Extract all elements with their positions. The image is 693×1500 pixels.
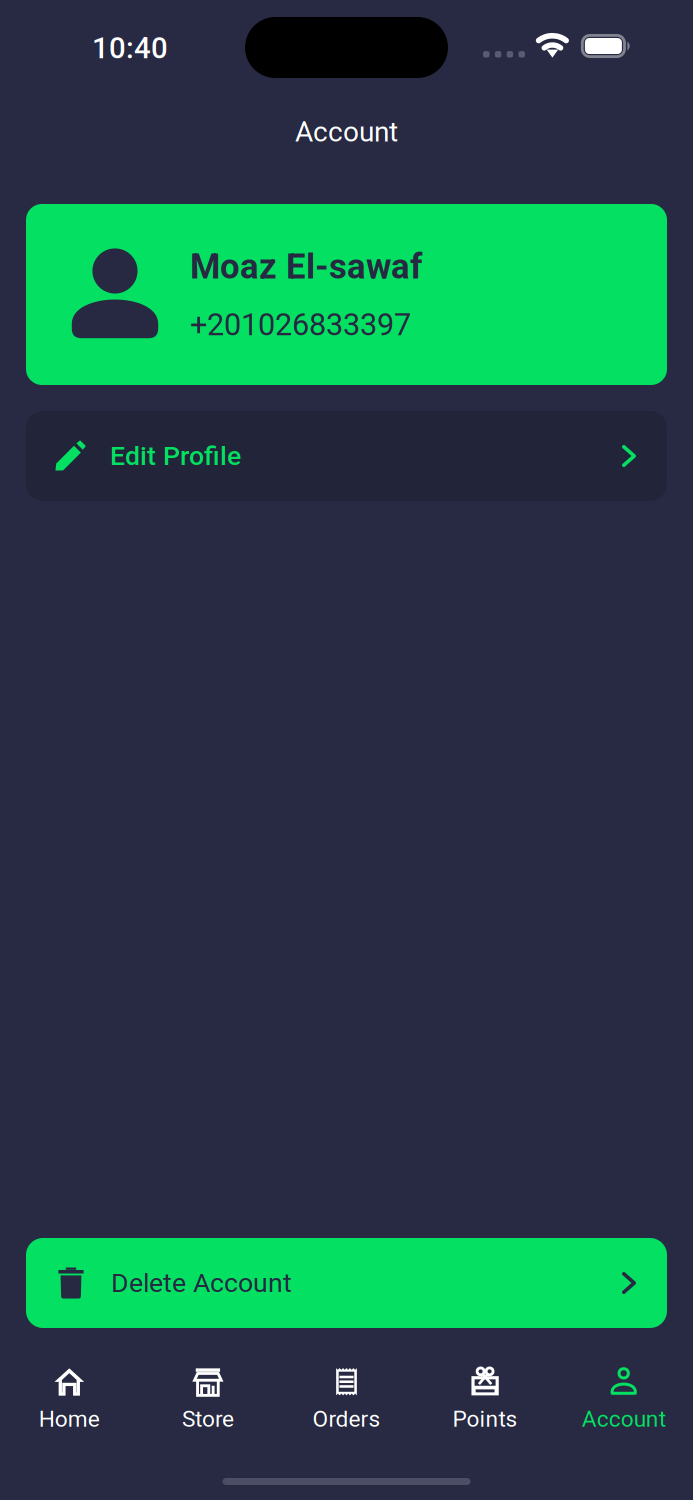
button[interactable]: Orders: [277, 1367, 416, 1432]
button[interactable]: Store: [139, 1367, 277, 1432]
button[interactable]: Points: [416, 1367, 554, 1432]
button[interactable]: Edit Profile: [0, 411, 693, 501]
staticText: Delete Account: [111, 1267, 292, 1299]
staticText: Points: [453, 1406, 518, 1432]
staticText: Edit Profile: [110, 440, 241, 472]
button[interactable]: Account: [554, 1367, 693, 1432]
staticText: Home: [39, 1406, 100, 1432]
staticText: Account: [295, 116, 398, 148]
staticText: Moaz El-sawaf: [190, 246, 422, 287]
staticText: Orders: [312, 1406, 380, 1432]
staticText: 10:40: [92, 31, 168, 65]
staticText: Account: [582, 1406, 666, 1432]
button[interactable]: Home: [0, 1367, 139, 1432]
staticText: +201026833397: [190, 307, 411, 343]
staticText: Store: [182, 1406, 234, 1432]
button[interactable]: Delete Account: [0, 1238, 693, 1328]
